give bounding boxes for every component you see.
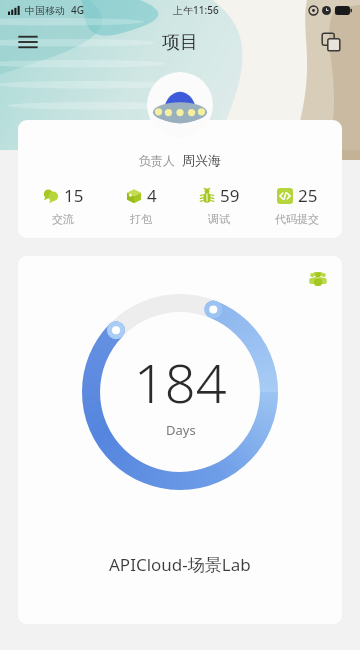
staticText: 打包 [130, 212, 152, 226]
staticText: 调试 [208, 212, 230, 226]
staticText: 184 [134, 345, 227, 419]
staticText: 负责人 [139, 153, 175, 168]
staticText: APICloud-场景Lab [109, 553, 251, 576]
button[interactable]: 59 [180, 184, 258, 226]
staticText: Days [166, 421, 196, 439]
button[interactable]: Project avatar [147, 72, 213, 138]
staticText: 代码提交 [275, 212, 319, 226]
staticText: 59 [220, 184, 240, 207]
button[interactable]: 15 [24, 184, 102, 226]
staticText: 上午11:56 [173, 3, 219, 17]
staticText: 项目 [162, 31, 198, 54]
staticText: 周兴海 [182, 152, 221, 168]
staticText: 15 [64, 184, 84, 207]
staticText: 交流 [52, 212, 74, 226]
button[interactable]: Team members [306, 266, 330, 290]
button[interactable]: Team members [18, 256, 342, 624]
button[interactable]: 4 [102, 184, 180, 226]
button[interactable]: 负责人 [18, 120, 342, 238]
staticText: 25 [298, 184, 318, 207]
button[interactable]: Menu [8, 22, 48, 62]
button[interactable]: 25 [258, 184, 336, 226]
staticText: 4 [147, 184, 157, 207]
staticText: 中国移动 [25, 4, 65, 17]
button[interactable]: Projects [312, 23, 350, 61]
staticText: 4G [71, 3, 84, 17]
